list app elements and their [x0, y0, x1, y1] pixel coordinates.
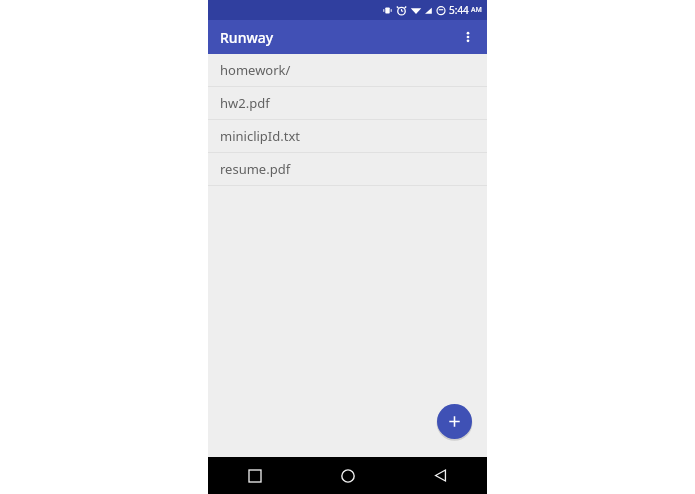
button[interactable]: More options — [455, 24, 481, 50]
button[interactable]: miniclipId.txt — [208, 120, 487, 152]
staticText: homework/ — [220, 61, 291, 79]
button[interactable]: resume.pdf — [208, 153, 487, 185]
staticText: AM — [471, 5, 482, 15]
staticText: resume.pdf — [220, 160, 291, 178]
button[interactable]: homework/ — [208, 54, 487, 86]
button[interactable]: Recents — [208, 457, 301, 494]
staticText: 5:44 — [449, 3, 469, 17]
button[interactable]: Home — [301, 457, 394, 494]
staticText: Runway — [220, 28, 274, 47]
staticText: hw2.pdf — [220, 94, 270, 112]
button[interactable]: Back — [394, 457, 487, 494]
button[interactable]: hw2.pdf — [208, 87, 487, 119]
staticText: miniclipId.txt — [220, 127, 300, 145]
button[interactable]: Add — [437, 404, 472, 439]
